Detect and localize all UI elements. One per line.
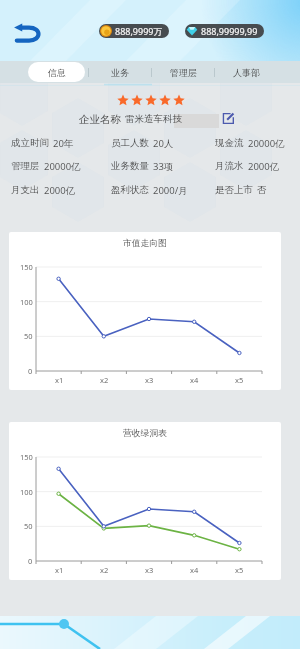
- button[interactable]: 管理层: [155, 62, 211, 82]
- staticText: 0: [28, 366, 33, 376]
- staticText: 月支出: [11, 184, 40, 195]
- staticText: 月流水: [215, 160, 244, 171]
- staticText: 888,9999万: [115, 25, 163, 37]
- staticText: 20000亿: [248, 137, 285, 148]
- staticText: x1: [55, 375, 64, 385]
- staticText: 2000/月: [153, 184, 188, 195]
- staticText: x3: [145, 565, 154, 575]
- staticText: 管理层: [170, 67, 197, 78]
- button[interactable]: 人事部: [218, 62, 274, 82]
- staticText: x2: [100, 565, 109, 575]
- staticText: 盈利状态: [111, 184, 149, 195]
- staticText: 业务数量: [111, 160, 149, 171]
- staticText: 2000亿: [44, 184, 76, 195]
- staticText: 人事部: [233, 67, 260, 78]
- staticText: 2000亿: [248, 160, 280, 171]
- staticText: x1: [55, 565, 64, 575]
- staticText: 业务: [111, 67, 129, 78]
- staticText: 管理层: [11, 160, 40, 171]
- staticText: 20年: [53, 137, 74, 148]
- staticText: 0: [28, 556, 33, 566]
- staticText: 否: [257, 184, 267, 195]
- staticText: x3: [145, 375, 154, 385]
- staticText: x4: [190, 565, 199, 575]
- staticText: 150: [20, 452, 33, 462]
- staticText: 是否上市: [215, 184, 253, 195]
- staticText: 50: [24, 521, 33, 531]
- staticText: 888,99999,99: [201, 25, 258, 37]
- staticText: 营收绿洞表: [123, 428, 167, 439]
- staticText: 100: [20, 487, 33, 497]
- staticText: 员工人数: [111, 137, 149, 148]
- staticText: 雷米造车科技: [125, 113, 182, 125]
- staticText: 市值走向图: [123, 238, 167, 249]
- staticText: x2: [100, 375, 109, 385]
- staticText: 100: [20, 297, 33, 307]
- button[interactable]: 888,99999,99: [186, 24, 258, 38]
- button[interactable]: Back: [10, 20, 44, 46]
- staticText: x4: [190, 375, 199, 385]
- staticText: 20000亿: [44, 160, 81, 171]
- staticText: x5: [235, 375, 244, 385]
- staticText: 50: [24, 331, 33, 341]
- staticText: 信息: [48, 67, 66, 78]
- button[interactable]: 888,9999万: [100, 24, 163, 38]
- staticText: 150: [20, 262, 33, 272]
- staticText: 企业名称: [79, 113, 121, 126]
- staticText: 现金流: [215, 137, 244, 148]
- button[interactable]: 信息: [28, 62, 85, 82]
- staticText: 20人: [153, 137, 174, 148]
- button[interactable]: 业务: [92, 62, 148, 82]
- staticText: 33项: [153, 160, 174, 171]
- button[interactable]: Edit name: [222, 112, 235, 125]
- staticText: 成立时间: [11, 137, 49, 148]
- staticText: x5: [235, 565, 244, 575]
